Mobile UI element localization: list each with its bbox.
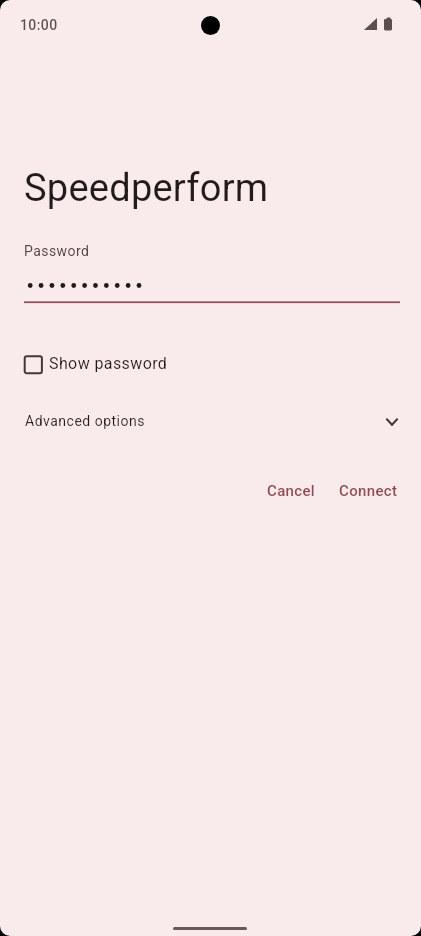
staticText: Show password <box>49 354 168 373</box>
other: Expand advanced options <box>384 414 400 430</box>
button[interactable]: Show password <box>12 347 180 383</box>
button[interactable]: Connect <box>328 471 408 511</box>
staticText: Password <box>24 243 90 259</box>
button[interactable]: Cancel <box>256 471 326 511</box>
staticText: Connect <box>339 482 398 500</box>
staticText: Advanced options <box>25 413 145 429</box>
staticText: Cancel <box>267 482 316 500</box>
staticText: 10:00 <box>20 17 58 33</box>
staticText: Speedperform <box>24 166 269 211</box>
button[interactable]: Advanced options <box>0 400 421 444</box>
